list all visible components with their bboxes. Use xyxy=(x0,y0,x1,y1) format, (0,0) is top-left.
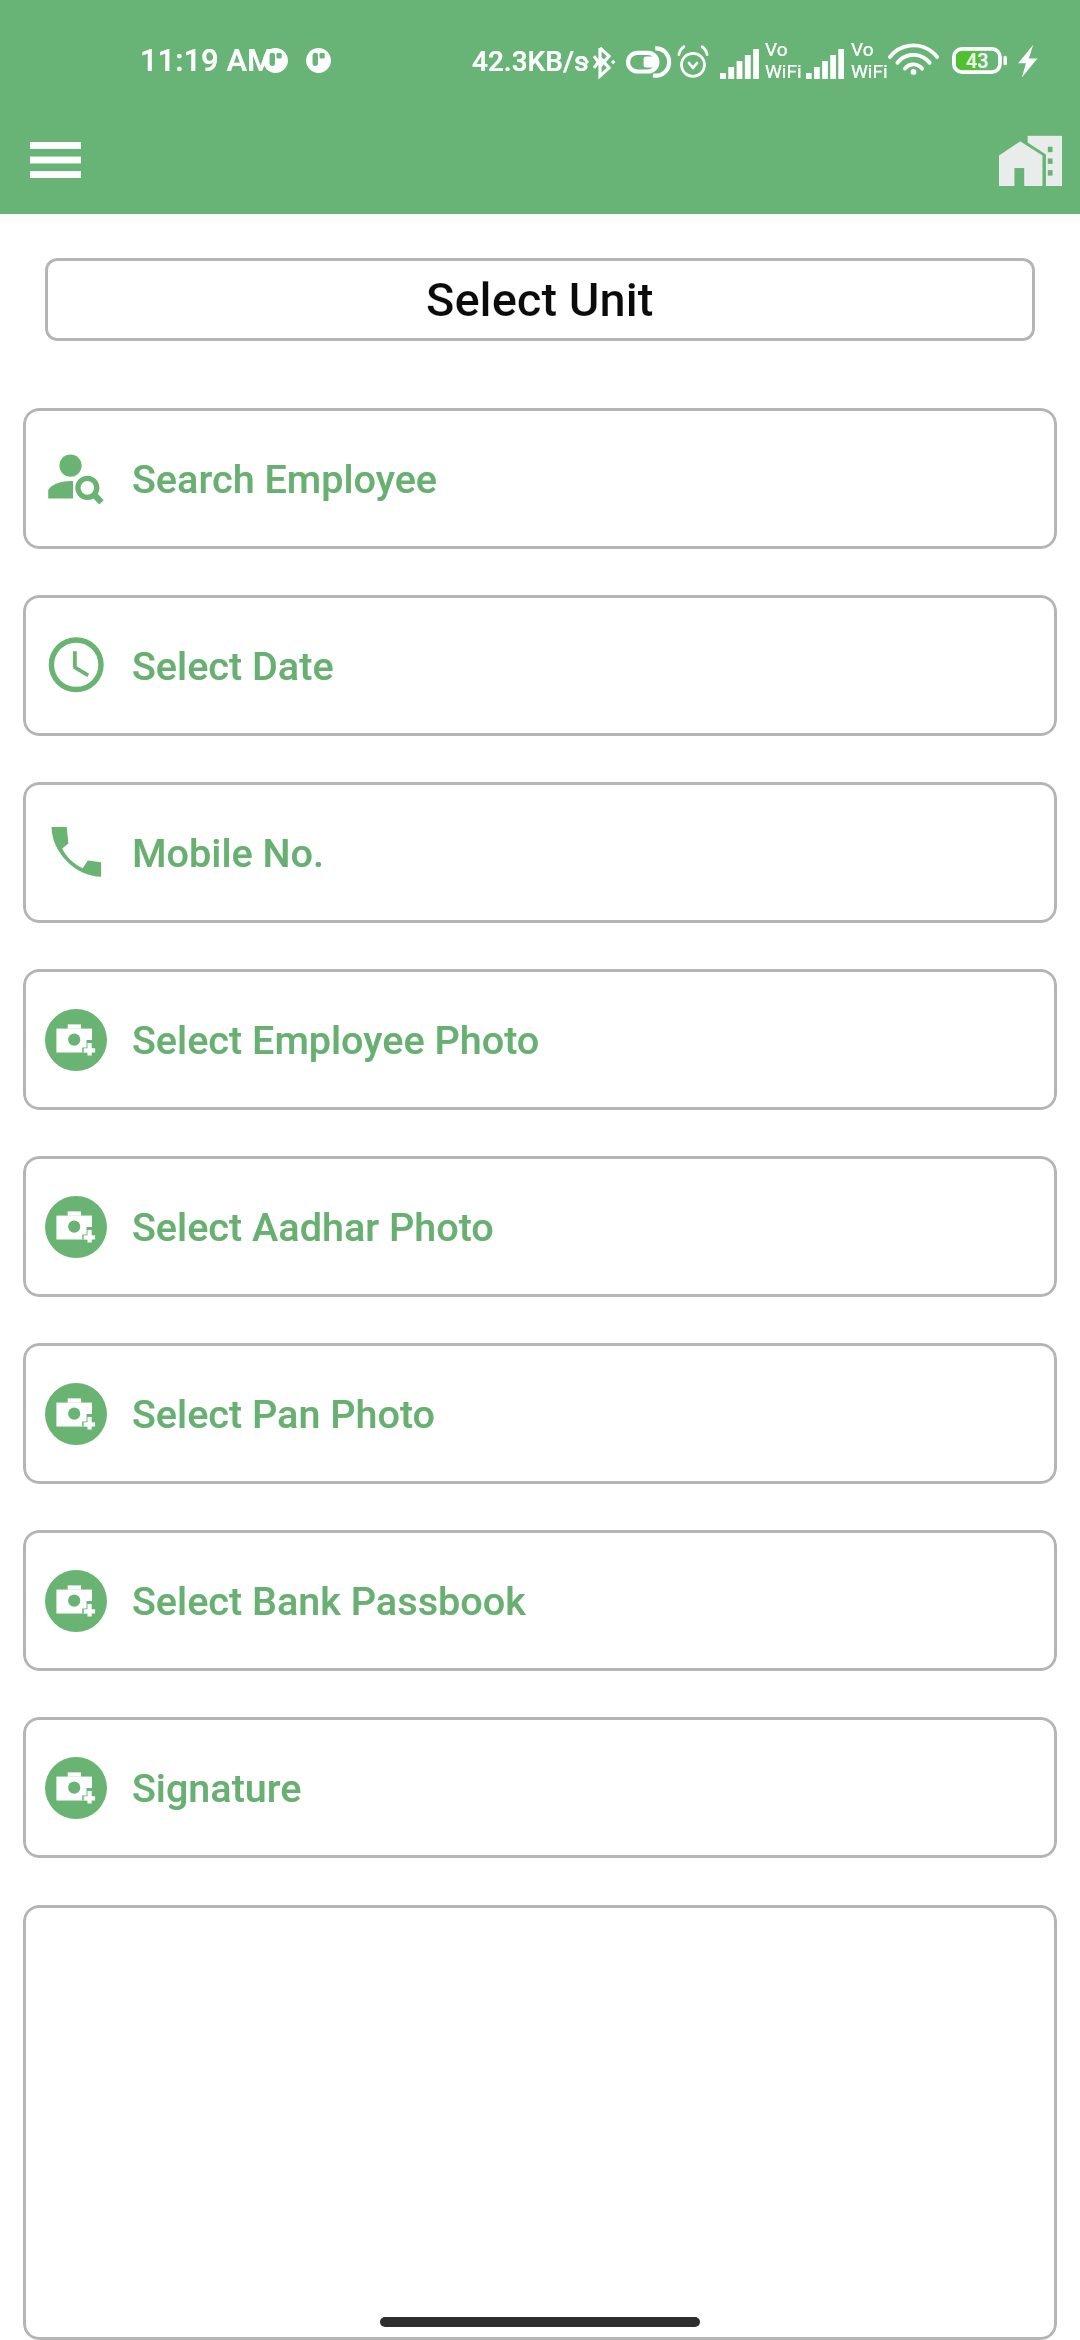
staticText: Select Aadhar Photo xyxy=(132,1204,494,1250)
button[interactable]: Select Aadhar Photo xyxy=(23,1156,1057,1297)
staticText: Select Date xyxy=(132,643,334,689)
staticText: Vo xyxy=(765,38,788,60)
staticText: 11:19 AM xyxy=(140,42,275,78)
staticText: Signature xyxy=(132,1765,302,1811)
button[interactable]: Search Employee xyxy=(23,408,1057,549)
button[interactable]: Select Bank Passbook xyxy=(23,1530,1057,1671)
button[interactable]: Select Pan Photo xyxy=(23,1343,1057,1484)
button[interactable]: Mobile No. xyxy=(23,782,1057,923)
staticText: Select Unit xyxy=(426,272,654,327)
staticText: WiFi xyxy=(765,60,802,82)
staticText: Search Employee xyxy=(132,456,438,502)
button[interactable]: Open navigation menu xyxy=(12,125,98,195)
staticText: 43 xyxy=(966,49,989,72)
staticText: Vo xyxy=(851,38,874,60)
staticText: Select Pan Photo xyxy=(132,1391,436,1437)
button[interactable]: Select Employee Photo xyxy=(23,969,1057,1110)
staticText: Select Employee Photo xyxy=(132,1017,540,1063)
staticText: 42.3KB/s xyxy=(472,45,589,78)
button[interactable]: Home xyxy=(990,120,1070,200)
button[interactable]: Select Unit xyxy=(45,258,1035,341)
button[interactable]: Signature xyxy=(23,1717,1057,1858)
button[interactable]: Select Date xyxy=(23,595,1057,736)
staticText: WiFi xyxy=(851,60,888,82)
staticText: Mobile No. xyxy=(132,830,325,876)
staticText: Select Bank Passbook xyxy=(132,1578,526,1624)
